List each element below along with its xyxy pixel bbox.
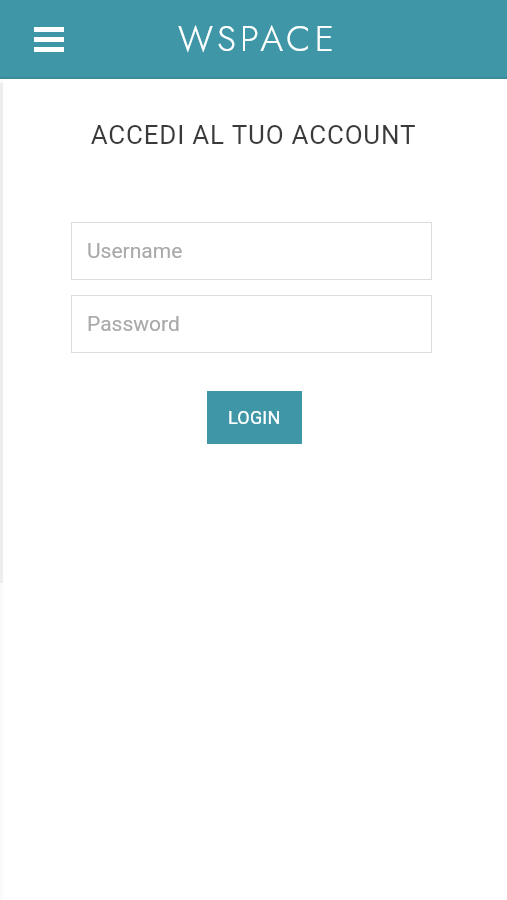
- staticText: ACCEDI AL TUO ACCOUNT: [0, 120, 507, 150]
- button[interactable]: LOGIN: [207, 391, 302, 444]
- button[interactable]: Username: [71, 222, 432, 280]
- staticText: Password: [87, 312, 180, 337]
- staticText: WSPACE: [178, 12, 338, 64]
- button[interactable]: Password: [71, 295, 432, 353]
- button[interactable]: Open navigation menu: [34, 27, 64, 52]
- staticText: LOGIN: [228, 407, 281, 428]
- staticText: Username: [87, 239, 183, 264]
